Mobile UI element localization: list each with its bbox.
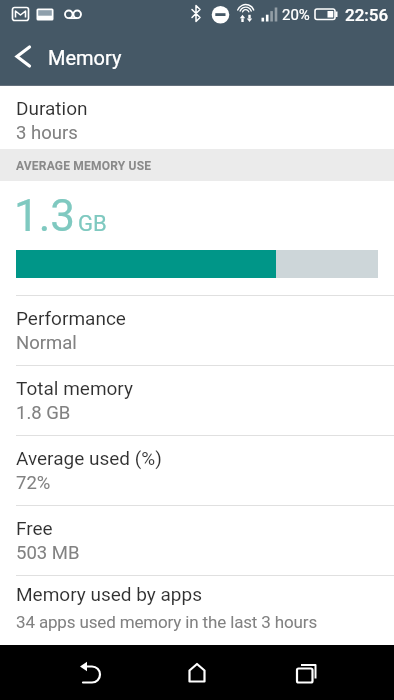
- button[interactable]: [0, 645, 132, 700]
- staticText: Total memory: [16, 377, 133, 399]
- button[interactable]: [4, 38, 46, 76]
- staticText: GB: [78, 211, 107, 237]
- staticText: 1.3: [14, 190, 76, 242]
- staticText: 72%: [16, 472, 51, 494]
- staticText: Duration: [16, 97, 88, 119]
- button[interactable]: Memory used by apps: [0, 575, 394, 645]
- button[interactable]: [132, 645, 263, 700]
- staticText: AVERAGE MEMORY USE: [16, 159, 152, 173]
- staticText: Performance: [16, 307, 126, 329]
- staticText: Free: [16, 517, 53, 539]
- button[interactable]: Duration: [0, 90, 394, 149]
- staticText: 34 apps used memory in the last 3 hours: [16, 612, 318, 632]
- button[interactable]: [263, 645, 394, 700]
- staticText: Memory used by apps: [16, 583, 203, 605]
- staticText: 3 hours: [16, 122, 78, 144]
- staticText: 1.8 GB: [16, 402, 71, 424]
- staticText: Memory: [48, 46, 122, 69]
- staticText: 503 MB: [16, 542, 80, 564]
- button[interactable]: Average used (%): [0, 435, 394, 505]
- staticText: Normal: [16, 332, 77, 354]
- staticText: Average used (%): [16, 447, 162, 469]
- staticText: 22:56: [345, 5, 389, 25]
- staticText: 20%: [282, 6, 310, 24]
- button[interactable]: Performance: [0, 295, 394, 365]
- button[interactable]: Total memory: [0, 365, 394, 435]
- button[interactable]: Free: [0, 505, 394, 575]
